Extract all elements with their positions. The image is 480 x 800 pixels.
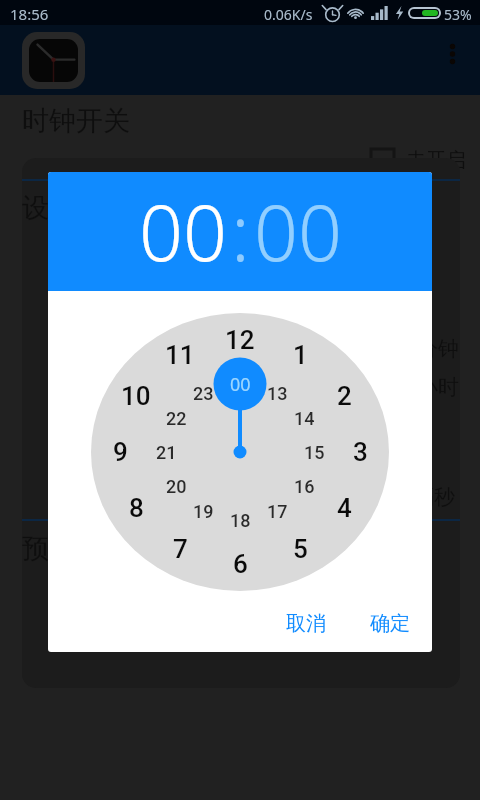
staticText: 未开启 <box>406 148 466 173</box>
button[interactable]: 取消 <box>270 601 342 646</box>
staticText: 6 <box>233 549 248 579</box>
staticText: : <box>231 179 250 284</box>
button[interactable]: 00 <box>139 179 227 284</box>
staticText: 确定 <box>370 611 410 636</box>
staticText: 23 <box>193 383 214 404</box>
staticText: 19 <box>193 501 214 522</box>
staticText: 取消 <box>286 611 326 636</box>
staticText: 14 <box>294 408 315 429</box>
button[interactable]: More options <box>432 35 470 73</box>
staticText: 13 <box>267 383 288 404</box>
button[interactable]: 00 <box>254 179 342 284</box>
staticText: 时钟开关 <box>22 104 130 138</box>
staticText: 18 <box>230 510 251 531</box>
staticText: 5 <box>293 534 308 564</box>
staticText: 11 <box>165 340 195 370</box>
staticText: 16 <box>294 476 315 497</box>
staticText: 预约 <box>22 532 76 566</box>
staticText: 7 <box>173 534 188 564</box>
staticText: 21 <box>156 442 177 463</box>
staticText: 22 <box>166 408 187 429</box>
staticText: 53% <box>444 5 472 24</box>
staticText: 4 <box>337 493 352 523</box>
staticText: 2 <box>337 381 352 411</box>
staticText: 10 <box>121 381 151 411</box>
staticText: 00 <box>230 372 251 397</box>
staticText: 12 <box>225 325 255 355</box>
staticText: 设置间隔秒 <box>350 484 455 510</box>
staticText: 20 <box>166 476 187 497</box>
staticText: 设置重复的时间为 30 分钟 <box>214 334 459 363</box>
staticText: 设置间隔小时 <box>333 374 459 400</box>
staticText: 9 <box>113 437 128 467</box>
staticText: 8 <box>129 493 144 523</box>
staticText: 1 <box>293 340 308 370</box>
staticText: 18:56 <box>10 4 49 24</box>
button[interactable]: 确定 <box>354 601 426 646</box>
staticText: 3 <box>353 437 368 467</box>
staticText: 17 <box>267 501 288 522</box>
staticText: 15 <box>304 442 325 463</box>
staticText: 设置 <box>22 191 76 225</box>
staticText: 0.06K/s <box>264 5 313 24</box>
